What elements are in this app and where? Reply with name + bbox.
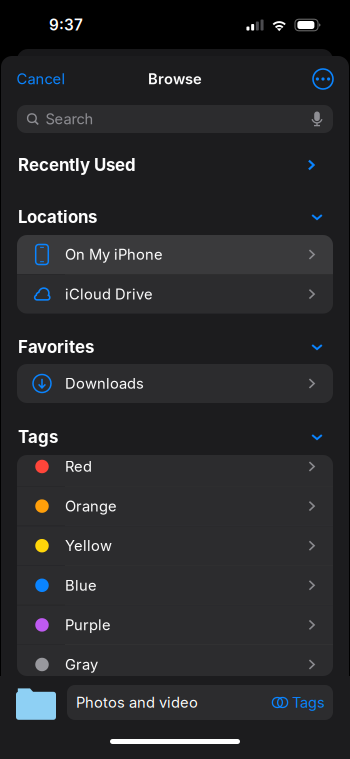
staticText: On My iPhone: [65, 246, 163, 263]
button[interactable]: Blue: [17, 566, 333, 605]
staticText: Tags: [18, 427, 58, 447]
staticText: Photos and video: [76, 694, 198, 711]
button[interactable]: Purple: [17, 605, 333, 644]
button[interactable]: iCloud Drive: [17, 275, 333, 314]
button[interactable]: Recently Used: [18, 152, 320, 178]
button[interactable]: Collapse Locations: [302, 204, 332, 230]
staticText: Yellow: [65, 537, 112, 554]
button[interactable]: Gray: [17, 645, 333, 684]
button[interactable]: Collapse Favorites: [302, 334, 332, 360]
button[interactable]: Downloads: [17, 364, 333, 403]
staticText: Orange: [65, 497, 117, 515]
staticText: Tags: [292, 694, 325, 711]
staticText: Red: [65, 458, 92, 475]
button[interactable]: Tags: [264, 685, 333, 720]
staticText: Blue: [65, 576, 97, 594]
button[interactable]: Yellow: [17, 526, 333, 565]
staticText: Favorites: [18, 337, 94, 357]
staticText: Search: [45, 110, 93, 128]
button[interactable]: More: [306, 62, 340, 96]
staticText: Recently Used: [18, 155, 136, 175]
staticText: Purple: [65, 616, 111, 634]
staticText: iCloud Drive: [65, 285, 153, 303]
button[interactable]: Orange: [17, 487, 333, 526]
staticText: Cancel: [16, 70, 65, 88]
staticText: Gray: [65, 656, 98, 673]
button[interactable]: On My iPhone: [17, 235, 333, 274]
button[interactable]: Cancel: [1, 62, 81, 96]
staticText: 9:37: [49, 16, 83, 34]
staticText: Downloads: [65, 375, 144, 392]
button[interactable]: Collapse Tags: [302, 424, 332, 450]
staticText: Locations: [18, 207, 97, 227]
staticText: Browse: [148, 70, 202, 88]
button[interactable]: Red: [17, 447, 333, 486]
